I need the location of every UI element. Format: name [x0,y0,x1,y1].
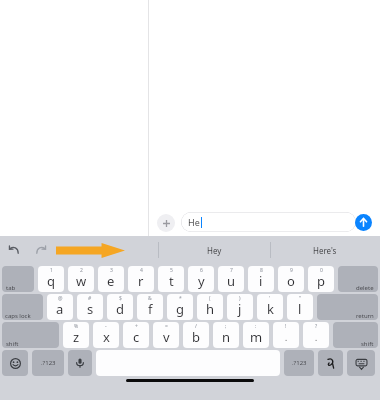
button[interactable]: shift [2,322,59,348]
staticText: He [188,216,200,228]
button[interactable] [318,350,343,376]
button[interactable]: % [63,322,89,348]
button[interactable]: .?123 [32,350,64,376]
staticText: a [56,300,64,318]
staticText: h [206,300,215,318]
button[interactable]: & [137,294,163,320]
staticText: " [299,295,302,302]
button[interactable]: ! [273,322,299,348]
button[interactable]: “He” [54,236,158,264]
button[interactable]: He [181,212,356,232]
button[interactable]: caps lock [2,294,43,320]
staticText: . [315,332,318,343]
staticText: & [148,295,152,302]
button[interactable]: tab [2,266,34,292]
staticText: j [238,300,242,318]
staticText: 5 [170,267,173,274]
button[interactable]: return [317,294,378,320]
staticText: “He” [98,245,115,256]
staticText: z [73,328,80,346]
button[interactable]: 8 [248,266,274,292]
staticText: f [148,300,153,318]
staticText: ; [225,323,227,330]
button[interactable]: 3 [98,266,124,292]
staticText: d [116,300,124,318]
button[interactable]: delete [338,266,378,292]
staticText: w [76,272,87,290]
staticText: m [250,328,263,346]
staticText: b [192,328,200,346]
button[interactable]: 7 [218,266,244,292]
staticText: p [317,272,325,290]
staticText: tab [6,284,16,292]
button[interactable]: .?123 [284,350,314,376]
button[interactable] [68,350,92,376]
staticText: o [287,272,295,290]
staticText: delete [356,284,374,292]
button[interactable]: 6 [188,266,214,292]
staticText: @ [58,295,63,302]
staticText: 3 [110,267,113,274]
staticText: ? [315,323,318,330]
button[interactable]: Undo [0,237,28,263]
staticText: u [227,272,236,290]
button[interactable]: 4 [128,266,154,292]
button[interactable]: + [123,322,149,348]
staticText: 9 [290,267,293,274]
button[interactable]: = [153,322,179,348]
button[interactable]: 5 [158,266,184,292]
staticText: n [222,328,231,346]
button[interactable]: Hey [159,236,270,264]
staticText: e [107,272,115,290]
staticText: .?123 [41,359,56,367]
staticText: k [267,300,274,318]
staticText: - [105,323,107,330]
button[interactable]: Redo [28,237,54,263]
button[interactable]: ' [257,294,283,320]
button[interactable]: # [77,294,103,320]
staticText: 8 [260,267,263,274]
staticText: * [179,295,182,302]
staticText: 1 [50,267,53,274]
staticText: .?123 [292,359,307,367]
staticText: ( [209,295,211,302]
button[interactable]: / [183,322,209,348]
button[interactable]: Here's [271,236,380,264]
staticText: y [198,272,205,290]
staticText: = [165,323,168,330]
button[interactable]: - [93,322,119,348]
staticText: $ [119,295,122,302]
button[interactable]: ( [197,294,223,320]
staticText: / [195,323,197,330]
button[interactable]: 1 [38,266,64,292]
button[interactable]: @ [47,294,73,320]
staticText: t [169,272,174,290]
staticText: i [259,272,263,290]
button[interactable]: ; [213,322,239,348]
staticText: caps lock [5,312,31,320]
staticText: g [176,300,184,318]
staticText: c [133,328,140,346]
staticText: 2 [80,267,83,274]
button[interactable]: ) [227,294,253,320]
button[interactable] [347,350,375,376]
staticText: Here's [313,245,337,256]
staticText: return [356,312,374,320]
button[interactable]: : [243,322,269,348]
staticText: 0 [320,267,323,274]
button[interactable]: ? [303,322,329,348]
button[interactable]: $ [107,294,133,320]
button[interactable]: Add attachment [157,214,175,232]
staticText: # [88,295,92,302]
button[interactable]: shift [333,322,378,348]
button[interactable]: Send [355,214,372,231]
button[interactable]: 0 [308,266,334,292]
button[interactable] [2,350,28,376]
button[interactable]: 2 [68,266,94,292]
staticText: + [135,323,138,330]
button[interactable]: 9 [278,266,304,292]
button[interactable]: " [287,294,313,320]
button[interactable]: * [167,294,193,320]
staticText: 6 [200,267,203,274]
